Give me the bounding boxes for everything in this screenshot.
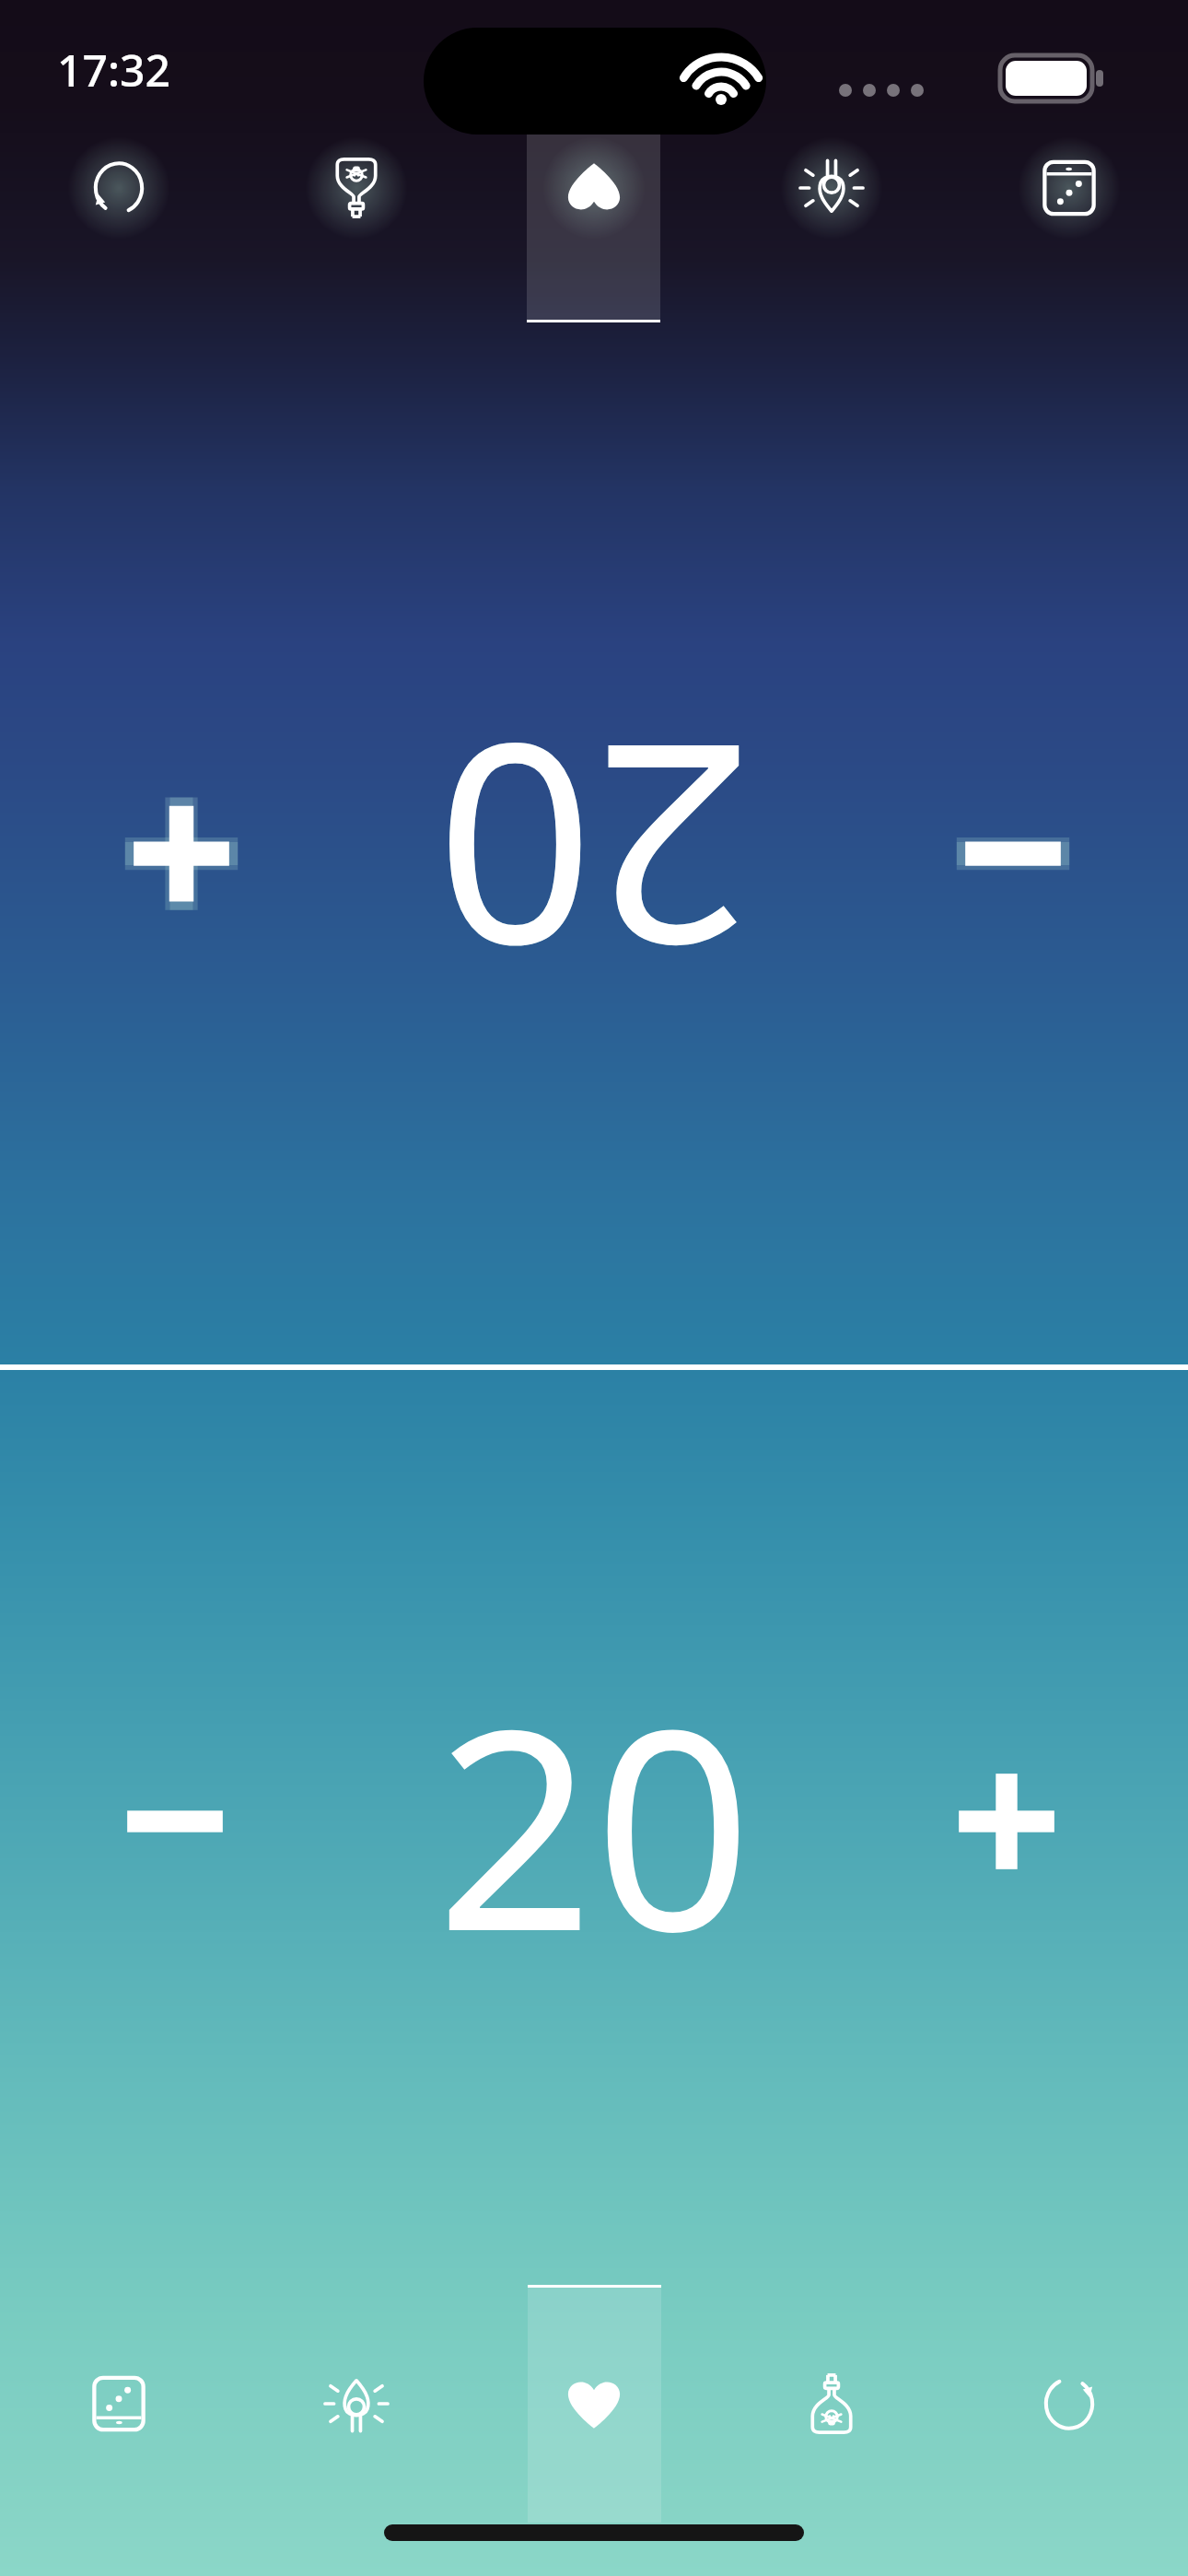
button[interactable]: Energy counter [238, 2285, 475, 2523]
staticText: 20 [436, 664, 752, 1041]
button[interactable]: 20 [0, 1370, 1188, 2275]
button[interactable]: Reset [0, 53, 238, 322]
button[interactable]: 20 [0, 341, 1188, 1364]
button[interactable]: Dice roller [950, 53, 1188, 322]
staticText: 20 [436, 664, 752, 1041]
staticText: 20 [436, 664, 752, 1041]
button[interactable]: Energy counter [713, 53, 950, 322]
button[interactable]: Poison counter [238, 53, 475, 322]
staticText: 20 [436, 664, 752, 1041]
button[interactable]: Reset [950, 2285, 1188, 2523]
button[interactable]: Life counter [475, 53, 713, 322]
button[interactable]: Poison counter [713, 2285, 950, 2523]
button[interactable]: Life counter [475, 2285, 713, 2523]
staticText: 20 [436, 1634, 752, 2011]
button[interactable]: Dice roller [0, 2285, 238, 2523]
staticText: 17:32 [57, 40, 170, 100]
